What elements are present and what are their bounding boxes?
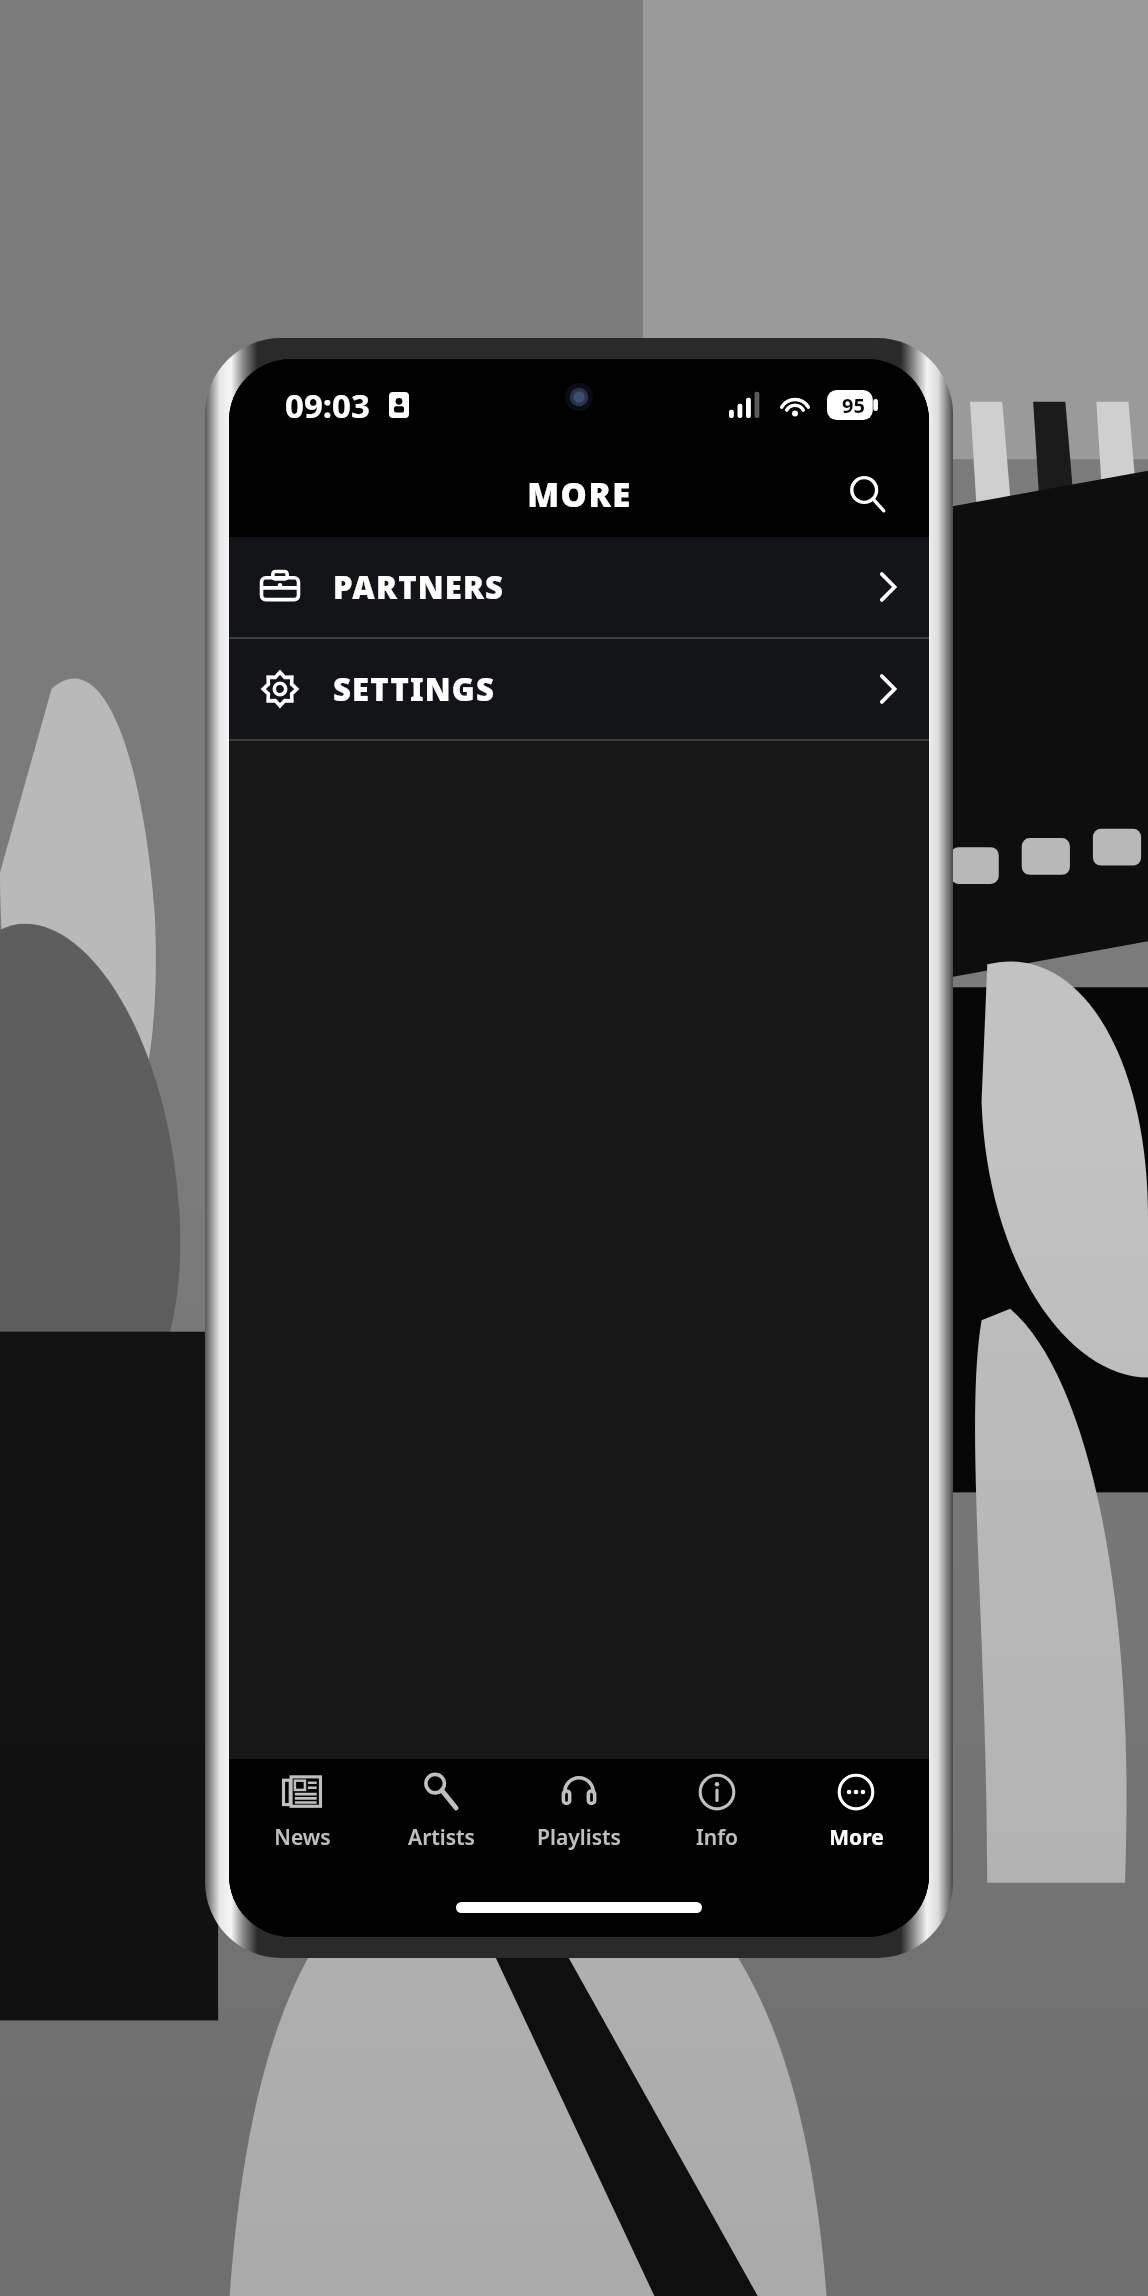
staticText: Info (696, 1823, 738, 1852)
staticText: 09:03 (285, 383, 370, 428)
staticText: Playlists (537, 1823, 621, 1852)
button[interactable]: News (237, 1771, 367, 1877)
staticText: PARTNERS (333, 566, 505, 608)
button[interactable]: More (791, 1771, 921, 1877)
button[interactable]: Playlists (514, 1771, 644, 1877)
button[interactable]: PARTNERS (229, 537, 929, 637)
staticText: News (274, 1823, 331, 1852)
staticText: More (829, 1823, 884, 1852)
staticText: Artists (408, 1823, 475, 1852)
button[interactable]: Info (652, 1771, 782, 1877)
button[interactable]: Search (827, 454, 907, 534)
button[interactable]: SETTINGS (229, 639, 929, 739)
staticText: MORE (527, 472, 632, 517)
staticText: 95 (842, 392, 865, 419)
button[interactable]: Artists (376, 1771, 506, 1877)
staticText: SETTINGS (333, 668, 496, 710)
